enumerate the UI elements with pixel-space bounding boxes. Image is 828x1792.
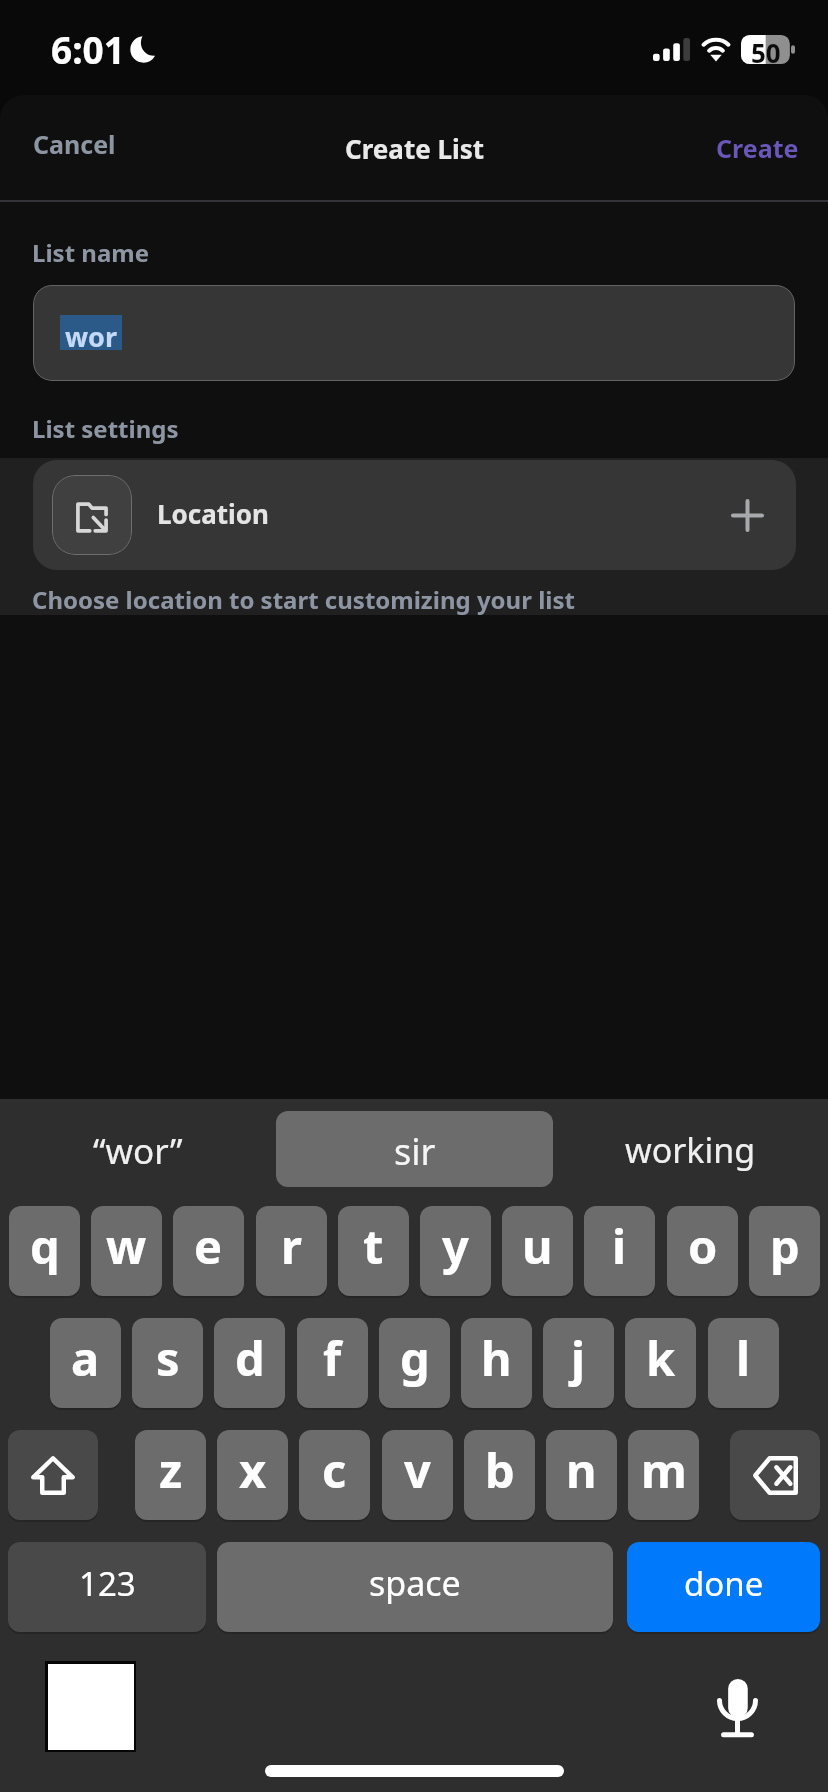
staticText: l <box>736 1326 751 1390</box>
button[interactable]: t <box>338 1206 409 1296</box>
staticText: d <box>235 1326 265 1390</box>
button[interactable]: x <box>217 1430 288 1520</box>
staticText: sir <box>394 1127 436 1176</box>
staticText: c <box>322 1438 347 1502</box>
staticText: List settings <box>32 412 179 445</box>
button[interactable]: p <box>749 1206 820 1296</box>
button[interactable]: k <box>625 1318 696 1408</box>
staticText: i <box>612 1214 627 1278</box>
staticText: 123 <box>79 1561 136 1606</box>
button[interactable]: Backspace <box>730 1430 820 1520</box>
staticText: 50 <box>751 35 781 64</box>
staticText: j <box>571 1326 586 1390</box>
staticText: Create List <box>345 131 485 166</box>
staticText: v <box>404 1438 431 1502</box>
button[interactable]: h <box>461 1318 532 1408</box>
button[interactable]: sir <box>276 1111 553 1187</box>
staticText: done <box>684 1561 764 1606</box>
button[interactable]: wor <box>33 285 795 381</box>
button[interactable]: r <box>256 1206 327 1296</box>
staticText: n <box>566 1438 597 1502</box>
button[interactable]: v <box>382 1430 453 1520</box>
button[interactable]: m <box>628 1430 699 1520</box>
staticText: s <box>156 1326 180 1390</box>
staticText: m <box>641 1438 687 1502</box>
button[interactable]: Location <box>33 460 796 570</box>
button[interactable]: u <box>502 1206 573 1296</box>
staticText: g <box>400 1326 430 1390</box>
staticText: wor <box>65 318 118 353</box>
staticText: o <box>688 1214 718 1278</box>
staticText: Location <box>157 496 269 531</box>
staticText: Create <box>716 131 799 165</box>
button[interactable]: f <box>297 1318 368 1408</box>
staticText: working <box>625 1127 756 1173</box>
button[interactable]: y <box>420 1206 491 1296</box>
staticText: u <box>522 1214 553 1278</box>
button[interactable]: Cancel <box>33 127 116 161</box>
staticText: e <box>194 1214 223 1278</box>
button[interactable]: s <box>132 1318 203 1408</box>
button[interactable]: e <box>173 1206 244 1296</box>
staticText: b <box>485 1438 515 1502</box>
staticText: a <box>71 1326 100 1390</box>
button[interactable]: done <box>627 1542 820 1632</box>
staticText: f <box>323 1326 342 1390</box>
button[interactable]: Dictation <box>706 1679 768 1741</box>
button[interactable]: l <box>708 1318 779 1408</box>
staticText: x <box>239 1438 267 1502</box>
button[interactable]: Emoji keyboard <box>45 1661 136 1752</box>
staticText: Choose location to start customizing you… <box>32 583 575 615</box>
button[interactable]: Shift <box>8 1430 98 1520</box>
staticText: z <box>159 1438 183 1502</box>
staticText: 6:01 <box>51 24 125 74</box>
staticText: q <box>30 1214 60 1278</box>
staticText: t <box>363 1214 384 1278</box>
button[interactable]: i <box>584 1206 655 1296</box>
staticText: List name <box>32 236 149 269</box>
button[interactable]: j <box>543 1318 614 1408</box>
button[interactable]: working <box>553 1111 828 1187</box>
staticText: k <box>646 1326 676 1390</box>
button[interactable]: g <box>379 1318 450 1408</box>
staticText: w <box>106 1214 147 1278</box>
button[interactable]: “wor” <box>0 1111 276 1187</box>
button[interactable]: b <box>464 1430 535 1520</box>
staticText: “wor” <box>93 1127 183 1175</box>
button[interactable]: c <box>299 1430 370 1520</box>
button[interactable]: Add location <box>714 482 780 548</box>
button[interactable]: space <box>217 1542 613 1632</box>
button[interactable]: 123 <box>8 1542 206 1632</box>
button[interactable]: w <box>91 1206 162 1296</box>
staticText: space <box>369 1560 461 1606</box>
button[interactable]: z <box>135 1430 206 1520</box>
button[interactable]: a <box>50 1318 121 1408</box>
button[interactable]: n <box>546 1430 617 1520</box>
button[interactable]: q <box>9 1206 80 1296</box>
button[interactable]: Create <box>716 131 799 165</box>
button[interactable]: o <box>667 1206 738 1296</box>
button[interactable]: d <box>214 1318 285 1408</box>
staticText: p <box>770 1214 800 1278</box>
staticText: r <box>281 1214 303 1278</box>
staticText: Cancel <box>33 127 116 161</box>
staticText: h <box>481 1326 512 1390</box>
staticText: y <box>442 1214 469 1278</box>
